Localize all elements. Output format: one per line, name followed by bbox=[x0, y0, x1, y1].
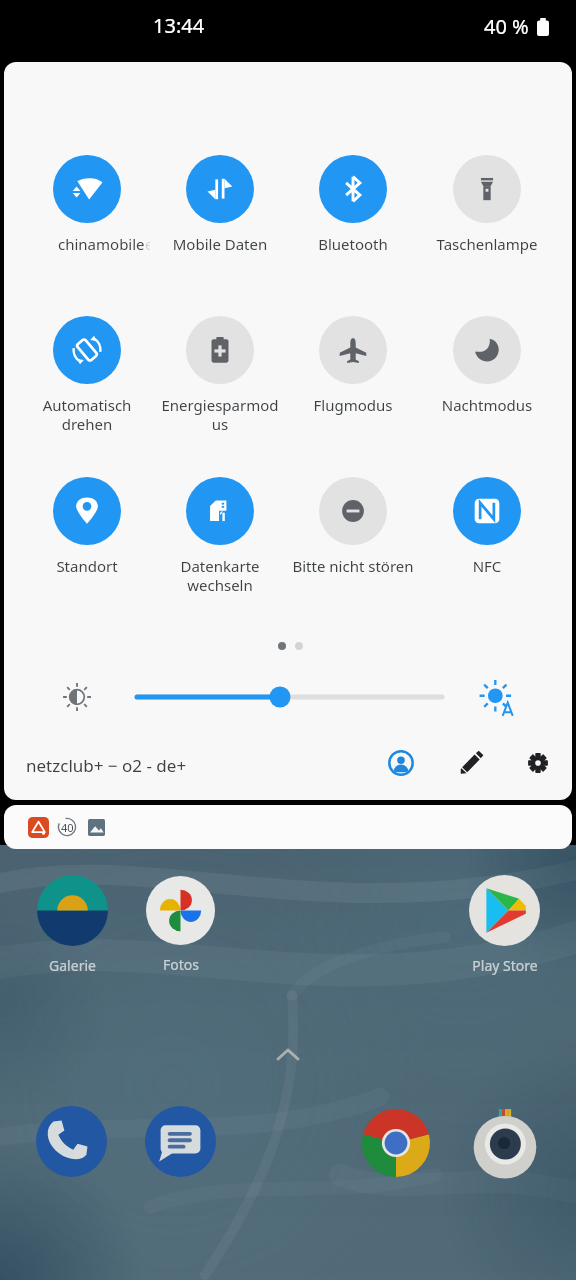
button[interactable]: Fotos bbox=[126, 876, 234, 989]
button[interactable]: Einstellungen bbox=[520, 745, 556, 781]
button[interactable]: Energiesparmodus bbox=[153, 316, 286, 434]
staticText: Energiesparmodus bbox=[157, 395, 283, 434]
staticText: 40 bbox=[61, 820, 74, 835]
button[interactable]: App-Schublade bbox=[268, 1042, 308, 1068]
button[interactable]: Chrome bbox=[362, 1109, 430, 1177]
staticText: Galerie bbox=[49, 956, 96, 975]
button[interactable]: Taschenlampe bbox=[420, 155, 554, 254]
button[interactable]: 40 bbox=[4, 805, 572, 849]
staticText: netzclub+ − o2 - de+ bbox=[26, 754, 187, 777]
staticText: chinamobile bbox=[58, 234, 145, 254]
button[interactable]: Mobile Daten bbox=[153, 155, 286, 254]
button[interactable]: NFC bbox=[420, 477, 554, 576]
staticText: Datenkarte wechseln bbox=[157, 556, 283, 595]
button[interactable]: Helligkeit bbox=[60, 680, 94, 714]
staticText: Taschenlampe bbox=[424, 234, 550, 254]
staticText: Standort bbox=[24, 556, 150, 576]
button[interactable]: Bearbeiten bbox=[453, 745, 489, 781]
button[interactable]: Nachtmodus bbox=[420, 316, 554, 415]
button[interactable]: Bitte nicht stören bbox=[286, 477, 420, 576]
staticText: Nachtmodus bbox=[424, 395, 550, 415]
button[interactable]: Automatisch drehen bbox=[20, 316, 153, 434]
button[interactable]: Play Store bbox=[450, 875, 558, 990]
button[interactable]: Telefon bbox=[36, 1106, 107, 1177]
staticText: Bitte nicht stören bbox=[290, 556, 416, 576]
staticText: Play Store bbox=[472, 956, 538, 975]
button[interactable] bbox=[132, 686, 446, 708]
button[interactable]: Bluetooth bbox=[286, 155, 420, 254]
staticText: Mobile Daten bbox=[157, 234, 283, 254]
staticText: NFC bbox=[424, 556, 550, 576]
button[interactable]: Nachrichten bbox=[145, 1106, 216, 1177]
button[interactable]: Galerie bbox=[18, 875, 126, 990]
button[interactable]: Flugmodus bbox=[286, 316, 420, 415]
staticText: Flugmodus bbox=[290, 395, 416, 415]
staticText: Fotos bbox=[163, 955, 199, 974]
staticText: Bluetooth bbox=[290, 234, 416, 254]
staticText: Automatisch drehen bbox=[24, 395, 150, 434]
button[interactable]: Kamera bbox=[469, 1108, 541, 1180]
staticText: e bbox=[145, 234, 150, 254]
button[interactable]: Automatische Helligkeit bbox=[476, 676, 518, 718]
staticText: 40 % bbox=[484, 13, 529, 40]
button[interactable]: Standort bbox=[20, 477, 153, 576]
button[interactable]: Nutzer bbox=[383, 745, 419, 781]
button[interactable]: Datenkarte wechseln bbox=[153, 477, 286, 595]
staticText: 13:44 bbox=[153, 12, 205, 39]
button[interactable]: chinamobile bbox=[20, 155, 153, 272]
